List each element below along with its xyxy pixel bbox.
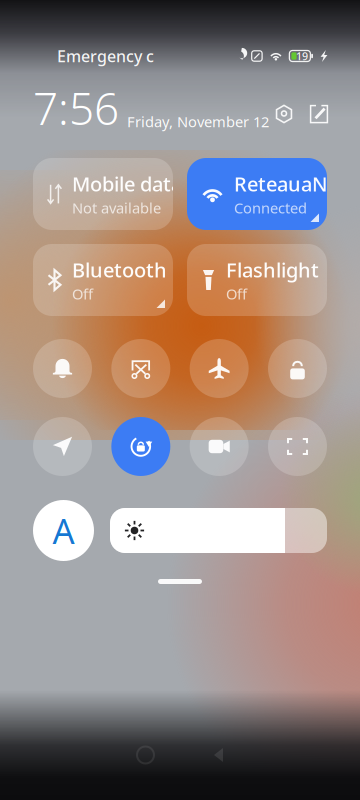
button[interactable]: Auto-rotate [111,417,170,476]
button[interactable]: Screen recorder [190,417,249,476]
staticText: 7:56 [33,79,119,137]
staticText: Off [72,284,93,303]
staticText: Off [226,284,247,303]
button[interactable]: Lock [268,339,327,398]
button[interactable]: Scan [268,417,327,476]
button[interactable]: Flashlight [187,244,327,316]
button[interactable]: Settings [274,91,294,125]
staticText: Bluetooth [72,256,167,283]
button[interactable]: Mobile data [33,158,173,230]
staticText: Friday, November 12 [127,112,269,131]
staticText: Connected [234,198,307,217]
button[interactable]: Auto brightness [33,500,94,561]
button[interactable]: Screenshot [111,339,170,398]
staticText: A [52,507,74,553]
staticText: Emergency c [57,45,154,67]
staticText: Flashlight [226,256,319,283]
staticText: Not available [72,198,161,217]
button[interactable]: Brightness [110,508,327,553]
staticText: ReteauaN [234,170,328,197]
staticText: Mobile data [72,170,182,197]
button[interactable]: ReteauaN [187,158,327,230]
button[interactable]: Silent [33,339,92,398]
staticText: 19 [296,49,308,63]
button[interactable]: Bluetooth [33,244,173,316]
button[interactable]: Airplane mode [190,339,249,398]
button[interactable]: Edit [310,91,328,125]
button[interactable]: Location [33,417,92,476]
